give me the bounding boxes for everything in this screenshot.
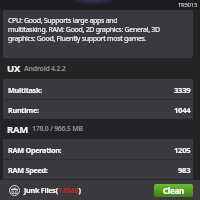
staticText: UX [7, 62, 20, 75]
staticText: Runtime: [8, 105, 39, 115]
staticText: 178.0 / 966.5 MB [32, 124, 83, 134]
staticText: TR5013 [178, 1, 197, 9]
staticText: 983 [178, 165, 191, 175]
staticText: RAM Speed: [8, 165, 48, 175]
other: Junk files [9, 185, 20, 196]
staticText: 1044 [174, 105, 191, 115]
staticText: CPU: Good, Supports large apps and multi… [8, 16, 160, 43]
staticText: RAM [7, 123, 28, 136]
button[interactable]: Multitask: [3, 79, 193, 100]
staticText: 3339 [174, 85, 191, 95]
staticText: RAM Operation: [8, 145, 62, 155]
staticText: Multitask: [8, 85, 42, 95]
staticText: Junk Files(7.0MB) [24, 185, 81, 195]
staticText: Android 4.2.2 [24, 64, 66, 74]
button[interactable]: Runtime: [3, 100, 193, 119]
staticText: Clean [163, 185, 184, 196]
button[interactable]: RAM Speed: [3, 160, 193, 180]
button[interactable]: RAM Operation: [3, 139, 193, 160]
button[interactable]: Clean [154, 184, 193, 197]
staticText: 1205 [174, 145, 191, 155]
